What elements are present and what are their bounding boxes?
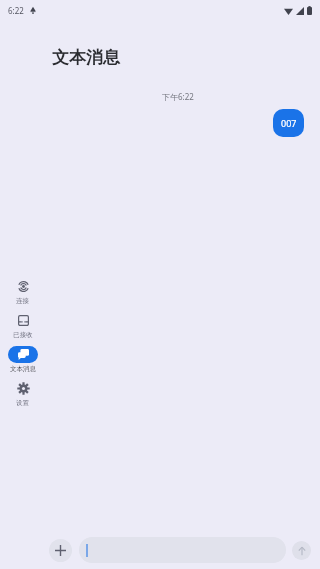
button[interactable]: 文本消息	[0, 346, 45, 373]
staticText: 文本消息	[52, 47, 120, 68]
button[interactable]: 已接收	[0, 312, 45, 339]
staticText: 007	[281, 117, 297, 129]
staticText: 6:22	[8, 5, 24, 16]
button[interactable]: 设置	[0, 380, 45, 407]
button[interactable]: 连接	[0, 278, 45, 305]
staticText: 下午6:22	[162, 91, 194, 102]
button[interactable]	[79, 537, 286, 563]
staticText: 设置	[16, 399, 29, 407]
button[interactable]: 发送	[292, 541, 311, 560]
button[interactable]: 007	[273, 109, 304, 137]
staticText: 已接收	[13, 331, 33, 339]
button[interactable]: 添加	[49, 539, 72, 562]
staticText: 文本消息	[10, 365, 36, 373]
staticText: 连接	[16, 297, 29, 305]
